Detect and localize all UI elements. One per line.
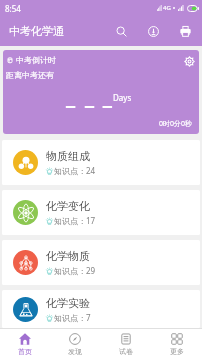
button[interactable]: 试卷: [100, 329, 151, 359]
button[interactable]: 更多: [151, 329, 202, 359]
button[interactable]: 中考倒计时: [3, 50, 199, 134]
staticText: 首页: [18, 347, 32, 356]
button[interactable]: 发现: [50, 329, 100, 359]
button[interactable]: Search: [105, 16, 137, 46]
staticText: 0时0分0秒: [159, 119, 193, 129]
staticText: 化学变化: [46, 199, 90, 213]
button[interactable]: Print: [169, 16, 201, 46]
staticText: 化学物质: [46, 249, 90, 263]
button[interactable]: Download: [137, 16, 169, 46]
button[interactable]: Settings: [181, 53, 197, 69]
button[interactable]: 化学变化: [2, 190, 200, 235]
staticText: 中考化学通: [9, 24, 64, 38]
button[interactable]: 化学物质: [2, 240, 200, 285]
staticText: 试卷: [119, 347, 133, 356]
staticText: 物质组成: [46, 149, 90, 163]
staticText: 知识点：24: [54, 165, 96, 176]
staticText: Days: [113, 92, 132, 103]
staticText: 知识点：17: [54, 215, 96, 226]
staticText: 更多: [170, 347, 184, 356]
staticText: 距离中考还有: [6, 70, 54, 80]
button[interactable]: 化学实验: [2, 290, 200, 328]
button[interactable]: 物质组成: [2, 140, 200, 185]
staticText: 8:54: [5, 3, 21, 14]
staticText: 中考倒计时: [16, 55, 56, 65]
staticText: 知识点：7: [54, 312, 91, 323]
staticText: 化学实验: [46, 296, 90, 310]
staticText: 4G: [163, 4, 171, 12]
button[interactable]: 首页: [0, 329, 50, 359]
staticText: 知识点：29: [54, 265, 96, 276]
staticText: 发现: [68, 347, 82, 356]
